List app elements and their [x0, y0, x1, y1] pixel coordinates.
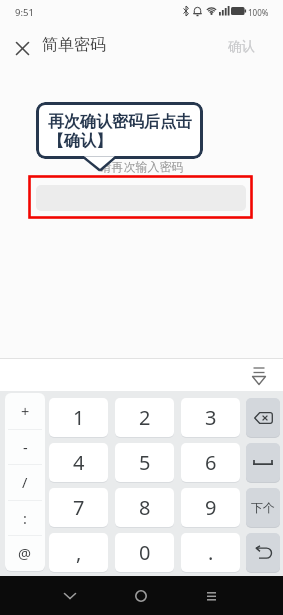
- staticText: 7: [73, 494, 85, 521]
- button[interactable]: [195, 580, 227, 612]
- button[interactable]: 7: [49, 488, 108, 527]
- button[interactable]: 5: [115, 443, 174, 482]
- staticText: .: [208, 539, 214, 566]
- button[interactable]: [246, 443, 280, 482]
- button[interactable]: /: [5, 464, 45, 500]
- staticText: 确认: [228, 38, 255, 55]
- button[interactable]: 0: [115, 533, 174, 572]
- button[interactable]: ,: [49, 533, 108, 572]
- staticText: 5: [139, 449, 151, 476]
- button[interactable]: 2: [115, 398, 174, 437]
- staticText: 4: [73, 449, 85, 476]
- button[interactable]: +: [5, 393, 45, 429]
- staticText: 【确认】: [48, 131, 112, 151]
- staticText: 简单密码: [42, 35, 106, 55]
- button[interactable]: 6: [181, 443, 240, 482]
- button[interactable]: [246, 363, 272, 389]
- button[interactable]: 确认: [215, 30, 267, 62]
- button[interactable]: [54, 580, 86, 612]
- button[interactable]: -: [5, 429, 45, 465]
- button[interactable]: 8: [115, 488, 174, 527]
- button[interactable]: @: [5, 535, 45, 571]
- staticText: ,: [76, 539, 82, 566]
- staticText: /: [22, 472, 28, 492]
- staticText: 3: [205, 404, 217, 431]
- button[interactable]: .: [181, 533, 240, 572]
- button[interactable]: 4: [49, 443, 108, 482]
- staticText: 2: [139, 404, 151, 431]
- button[interactable]: [246, 398, 280, 437]
- staticText: 请再次输入密码: [0, 159, 283, 174]
- staticText: 下个: [251, 500, 275, 515]
- staticText: :: [23, 508, 27, 528]
- staticText: @: [18, 543, 32, 563]
- button[interactable]: 9: [181, 488, 240, 527]
- staticText: 1: [73, 404, 85, 431]
- staticText: +: [21, 401, 30, 421]
- staticText: -: [23, 437, 28, 457]
- button[interactable]: 下个: [246, 488, 280, 527]
- staticText: 再次确认密码后点击: [48, 112, 192, 132]
- staticText: 9: [205, 494, 217, 521]
- staticText: 6: [205, 449, 217, 476]
- button[interactable]: 1: [49, 398, 108, 437]
- staticText: 9:51: [15, 6, 34, 19]
- button[interactable]: [125, 580, 157, 612]
- staticText: 0: [139, 539, 151, 566]
- button[interactable]: [246, 533, 280, 572]
- button[interactable]: :: [5, 500, 45, 536]
- button[interactable]: 3: [181, 398, 240, 437]
- staticText: 8: [139, 494, 151, 521]
- staticText: 100%: [248, 7, 269, 18]
- button[interactable]: [10, 36, 34, 60]
